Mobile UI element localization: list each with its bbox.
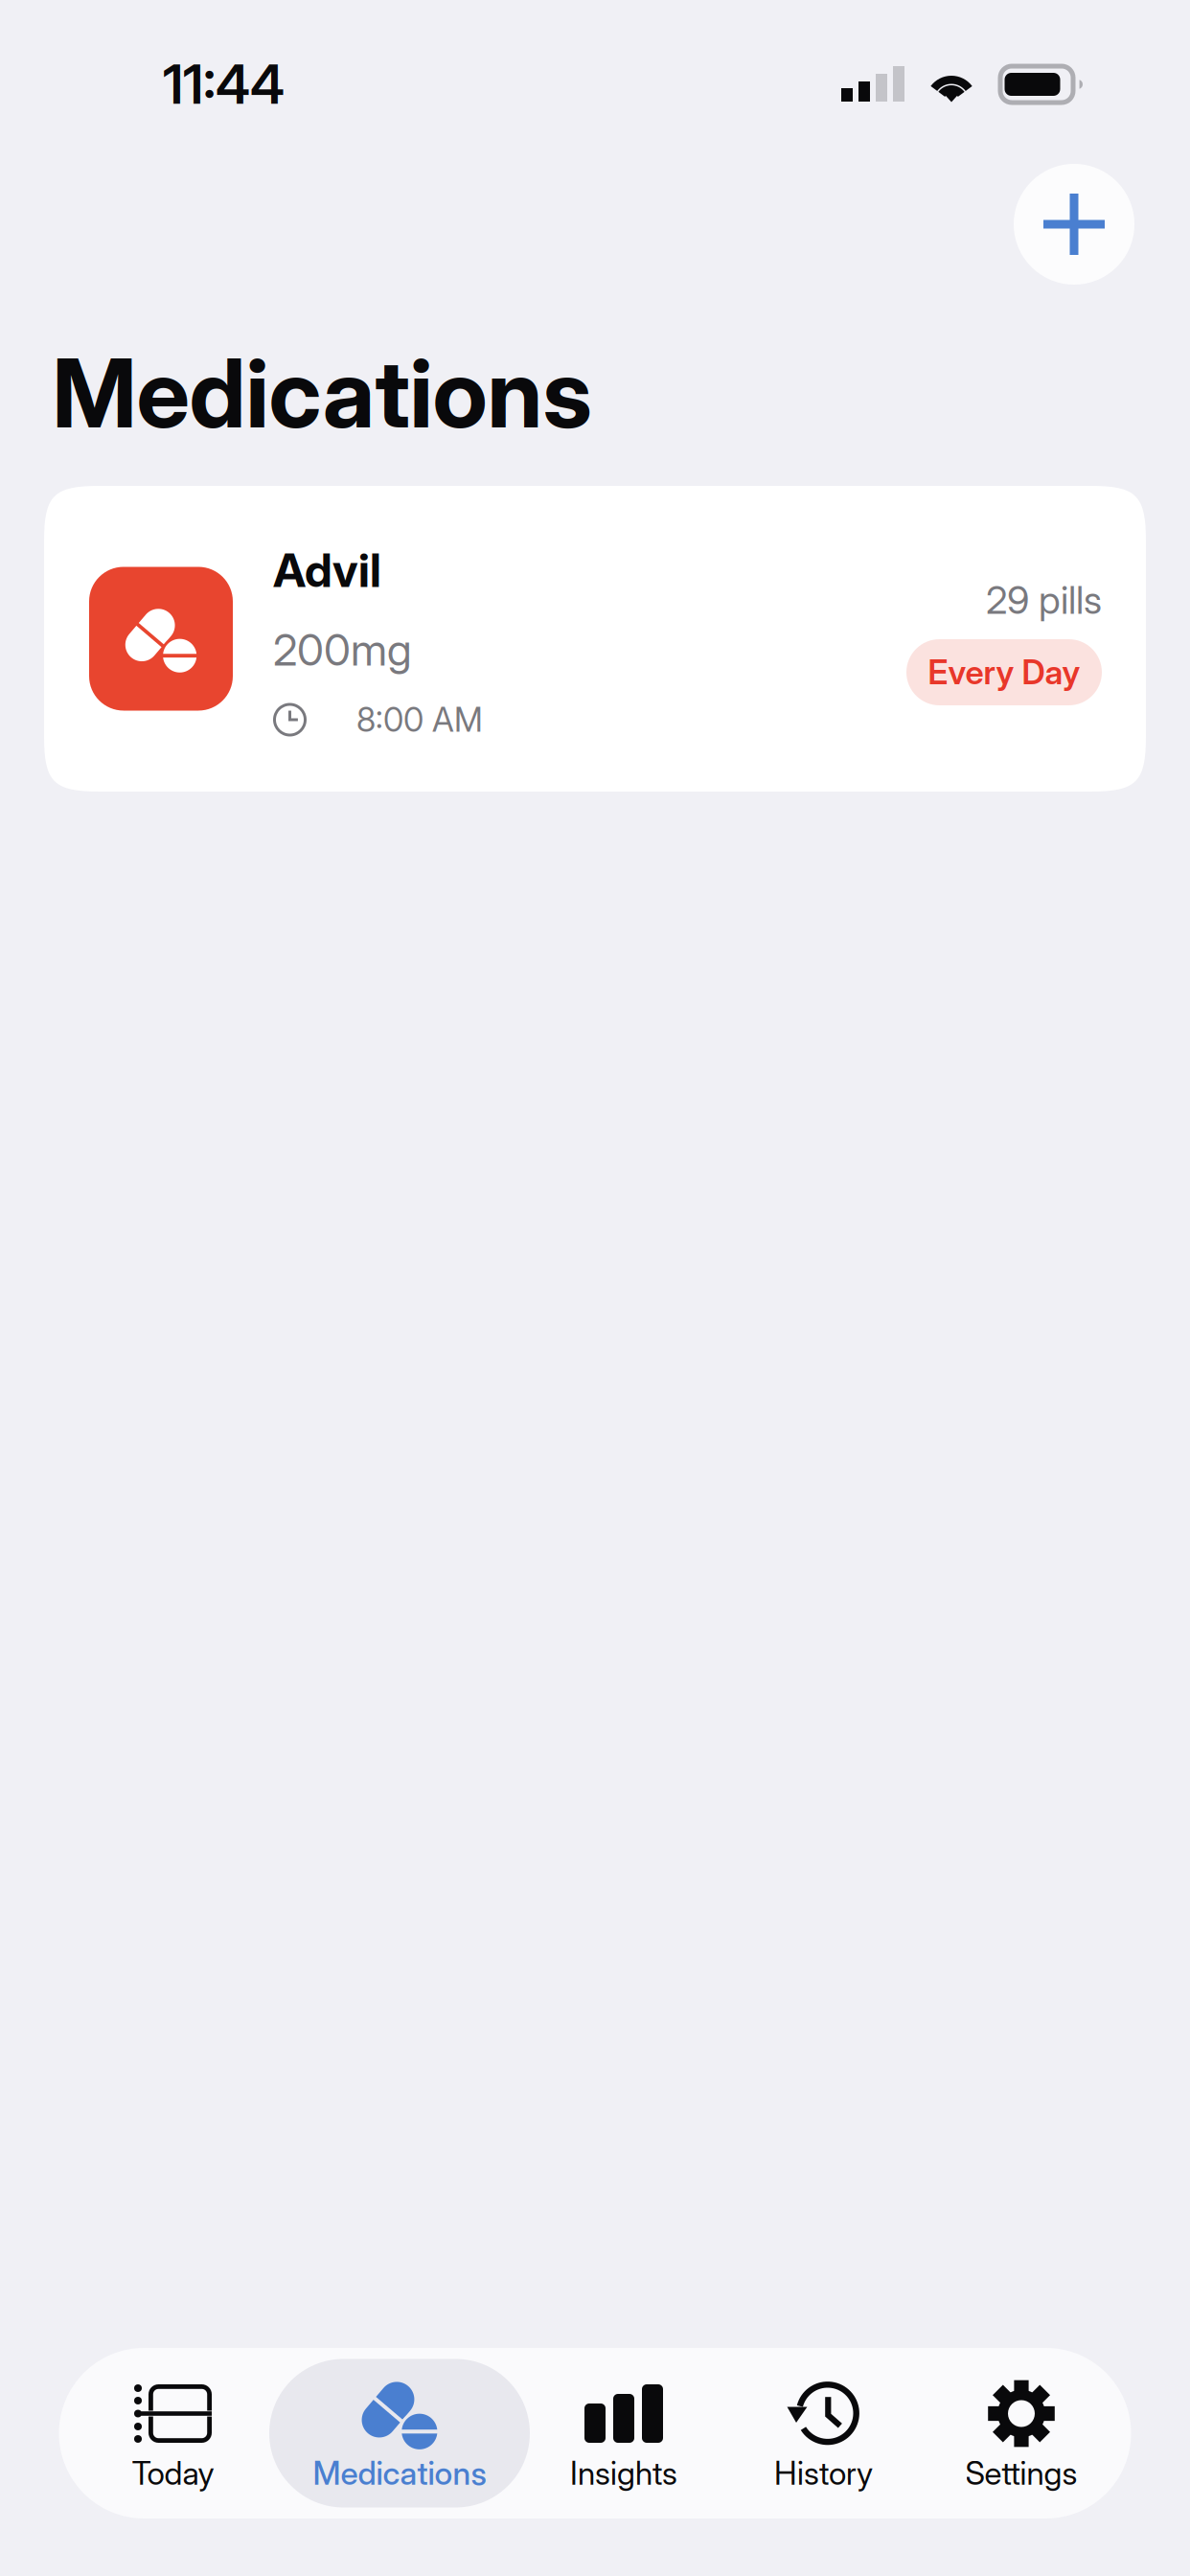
button[interactable]: Today (59, 2359, 287, 2507)
staticText: Medications (52, 336, 592, 450)
staticText: 11:44 (163, 52, 285, 117)
staticText: History (774, 2454, 873, 2492)
button[interactable]: Settings (912, 2359, 1131, 2507)
button[interactable]: Insights (512, 2359, 735, 2507)
staticText: Medications (313, 2454, 486, 2492)
button[interactable]: Advil (44, 486, 1146, 792)
button[interactable]: History (735, 2359, 912, 2507)
button[interactable]: Medications (287, 2359, 512, 2507)
staticText: Every Day (928, 652, 1080, 692)
staticText: Insights (570, 2454, 677, 2492)
staticText: 29 pills (986, 577, 1102, 623)
staticText: Settings (965, 2454, 1077, 2492)
staticText: Today (132, 2454, 214, 2492)
staticText: 200mg (273, 623, 412, 676)
staticText: Advil (273, 542, 381, 598)
staticText: 8:00 AM (356, 700, 483, 740)
button[interactable]: Add medication (1014, 164, 1134, 285)
